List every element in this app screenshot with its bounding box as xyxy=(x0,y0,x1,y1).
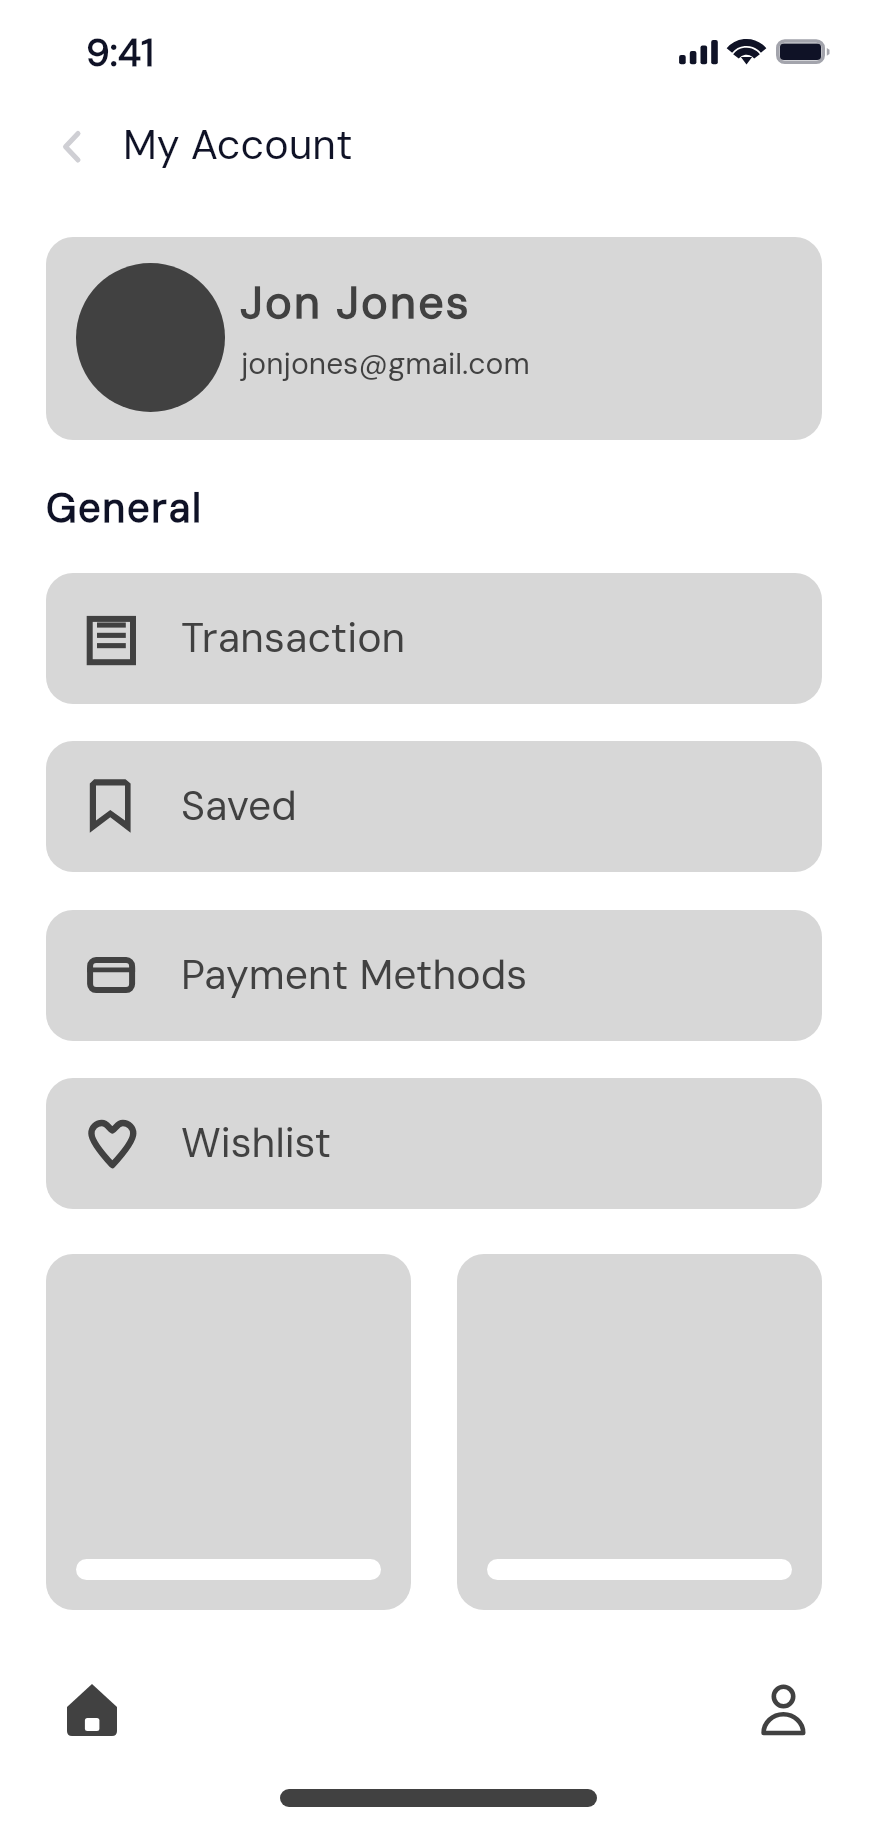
staticText: jonjones@gmail.com xyxy=(241,344,530,383)
button[interactable]: Transaction xyxy=(46,573,822,704)
button[interactable]: Jon Jones xyxy=(46,237,822,440)
staticText: Payment Methods xyxy=(181,948,528,1001)
other: Signal, wifi and battery xyxy=(678,36,834,66)
staticText: Jon Jones xyxy=(240,273,471,332)
staticText: 9:41 xyxy=(86,28,155,77)
staticText: Wishlist xyxy=(181,1116,332,1169)
staticText: General xyxy=(46,482,203,534)
staticText: My Account xyxy=(123,118,353,171)
staticText: Transaction xyxy=(181,611,406,664)
button[interactable]: Profile xyxy=(739,1664,827,1756)
staticText: Saved xyxy=(181,779,297,832)
button[interactable] xyxy=(457,1254,822,1610)
button[interactable]: Payment Methods xyxy=(46,910,822,1041)
button[interactable]: Wishlist xyxy=(46,1078,822,1209)
button[interactable]: Home xyxy=(48,1664,136,1756)
button[interactable]: Back xyxy=(44,119,102,177)
button[interactable] xyxy=(46,1254,411,1610)
button[interactable]: Saved xyxy=(46,741,822,872)
